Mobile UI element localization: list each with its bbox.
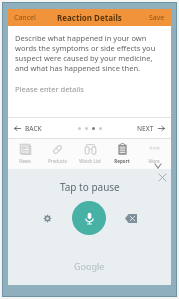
button[interactable]: Cancel — [8, 10, 42, 26]
button[interactable]: Save — [143, 10, 171, 26]
staticText: Watch List — [79, 158, 101, 164]
staticText: BACK — [25, 124, 42, 133]
button[interactable]: Report — [107, 139, 137, 164]
button[interactable]: Watch List — [75, 139, 105, 164]
button[interactable]: Voice settings — [37, 208, 58, 229]
staticText: Please enter details — [15, 84, 84, 94]
button[interactable]: Products — [42, 139, 72, 164]
button[interactable]: Tap to pause voice input — [72, 201, 106, 235]
staticText: Google — [74, 260, 105, 272]
staticText: Report — [114, 158, 130, 164]
staticText: NEXT — [137, 124, 154, 133]
staticText: Products — [48, 158, 67, 164]
button[interactable]: Backspace — [120, 209, 142, 228]
button[interactable]: NEXT — [131, 120, 171, 137]
button[interactable]: News — [10, 139, 40, 164]
staticText: Tap to pause — [60, 180, 120, 194]
staticText: News — [19, 158, 31, 164]
staticText: More — [148, 158, 160, 164]
button[interactable]: Close voice input — [154, 169, 171, 186]
staticText: Reaction Details — [57, 12, 122, 23]
staticText: Describe what happened in your own words… — [15, 33, 164, 73]
button[interactable]: BACK — [8, 120, 48, 137]
button[interactable]: More — [139, 139, 169, 164]
